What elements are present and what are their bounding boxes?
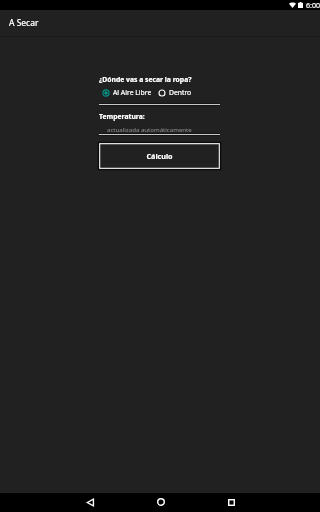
staticText: ¿Dónde vas a secar la ropa? xyxy=(99,75,192,84)
button[interactable]: Recent apps xyxy=(218,495,245,509)
button[interactable]: Cálculo xyxy=(99,143,220,169)
button[interactable]: Back xyxy=(77,495,104,509)
staticText: actualizada automáticamente xyxy=(107,125,192,133)
button[interactable]: Dentro xyxy=(158,88,192,97)
button[interactable]: Home xyxy=(147,495,174,509)
staticText: Dentro xyxy=(169,88,192,97)
button[interactable]: Al Aire Libre xyxy=(102,88,152,97)
staticText: A Secar xyxy=(9,17,39,29)
staticText: 6:00 xyxy=(306,1,320,11)
staticText: Cálculo xyxy=(146,151,173,161)
staticText: Al Aire Libre xyxy=(113,88,152,97)
staticText: Temperatura: xyxy=(99,112,145,121)
